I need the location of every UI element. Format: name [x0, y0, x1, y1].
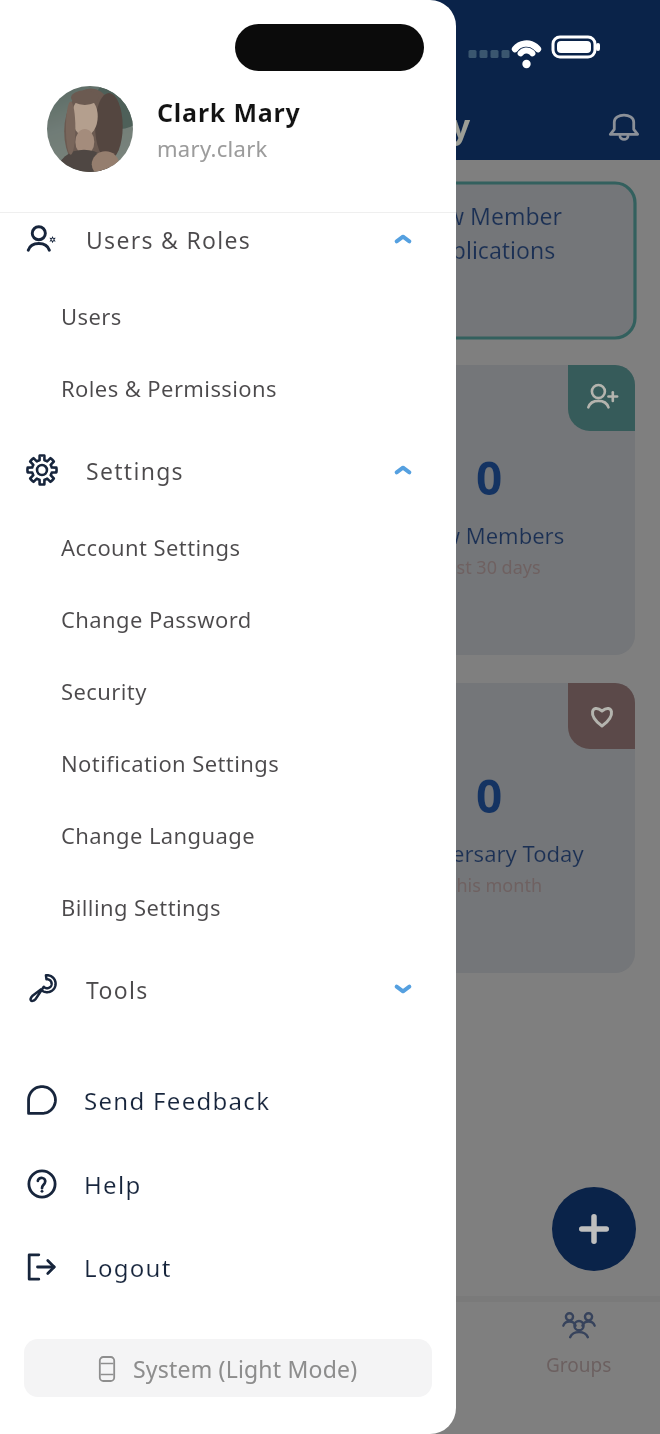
button[interactable]: Roles & Permissions — [0, 352, 456, 424]
staticText: 0 — [476, 764, 503, 827]
staticText: Tools — [86, 974, 149, 1005]
staticText: 0 — [476, 446, 503, 509]
button[interactable]: Add — [552, 1187, 636, 1271]
button[interactable]: Tools — [0, 953, 456, 1025]
staticText: Change Password — [61, 604, 252, 634]
button[interactable]: Logout — [0, 1231, 456, 1303]
button[interactable]: Notifications — [601, 102, 647, 148]
staticText: Dashboard Summary — [126, 103, 471, 148]
staticText: Roles & Permissions — [61, 373, 278, 403]
staticText: Send Feedback — [84, 1084, 271, 1117]
staticText: New Member — [416, 200, 563, 231]
staticText: Users & Roles — [86, 224, 252, 255]
button[interactable]: Send Feedback — [0, 1064, 456, 1136]
staticText: Applications — [423, 234, 556, 265]
button[interactable]: Change Password — [0, 583, 456, 655]
button[interactable]: Settings — [0, 434, 456, 506]
staticText: 0 this month — [435, 873, 543, 898]
staticText: Anniversary Today — [394, 838, 584, 868]
staticText: Groups — [546, 1352, 612, 1378]
button[interactable]: Change Language — [0, 799, 456, 871]
staticText: Users — [61, 301, 122, 331]
button[interactable]: Billing Settings — [0, 871, 456, 943]
staticText: Account Settings — [61, 532, 241, 562]
staticText: Change Language — [61, 820, 255, 850]
staticText: New Members — [414, 520, 565, 550]
staticText: Last 30 days — [437, 555, 541, 580]
button[interactable]: System (Light Mode) — [24, 1339, 432, 1397]
button[interactable]: Account Settings — [0, 511, 456, 583]
staticText: mary.clark — [157, 133, 268, 163]
staticText: Notification Settings — [61, 748, 280, 778]
button[interactable]: Help — [0, 1148, 456, 1220]
staticText: Billing Settings — [61, 892, 221, 922]
button[interactable]: Security — [0, 655, 456, 727]
button[interactable]: Notification Settings — [0, 727, 456, 799]
button[interactable]: Users & Roles — [0, 203, 456, 275]
staticText: Settings — [86, 455, 184, 486]
staticText: Logout — [84, 1251, 172, 1284]
button[interactable]: Users — [0, 280, 456, 352]
staticText: Help — [84, 1168, 142, 1201]
staticText: System (Light Mode) — [133, 1353, 358, 1384]
staticText: Security — [61, 676, 147, 706]
staticText: Clark Mary — [157, 95, 301, 129]
button[interactable]: Groups — [538, 1310, 619, 1378]
